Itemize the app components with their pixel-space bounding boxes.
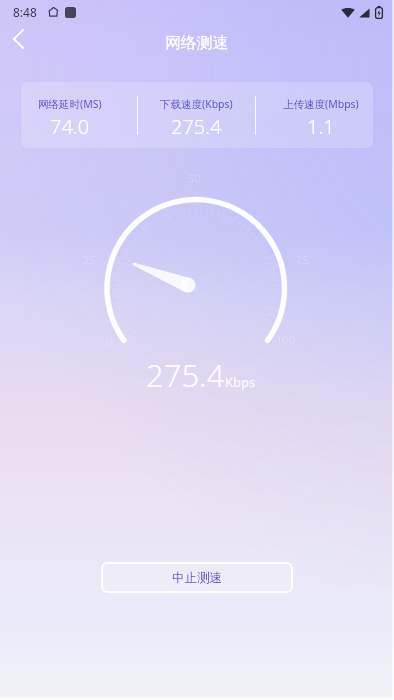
- button[interactable]: 中止测速: [101, 562, 293, 593]
- staticText: 75: [296, 252, 309, 267]
- staticText: 网络延时(MS): [38, 97, 102, 111]
- staticText: 网络测速: [165, 33, 229, 53]
- staticText: 275.4: [146, 354, 225, 396]
- staticText: Kbps: [225, 373, 256, 391]
- staticText: 74.0: [50, 113, 90, 140]
- staticText: 50: [188, 171, 201, 186]
- button[interactable]: Back: [1, 22, 35, 56]
- staticText: 275.4: [171, 113, 222, 140]
- staticText: 1.1: [307, 113, 335, 140]
- staticText: 25: [83, 252, 96, 267]
- staticText: 下载速度(Kbps): [160, 97, 233, 111]
- staticText: 中止测速: [172, 570, 222, 586]
- staticText: 上传速度(Mbps): [283, 97, 359, 111]
- staticText: 8:48: [13, 4, 37, 20]
